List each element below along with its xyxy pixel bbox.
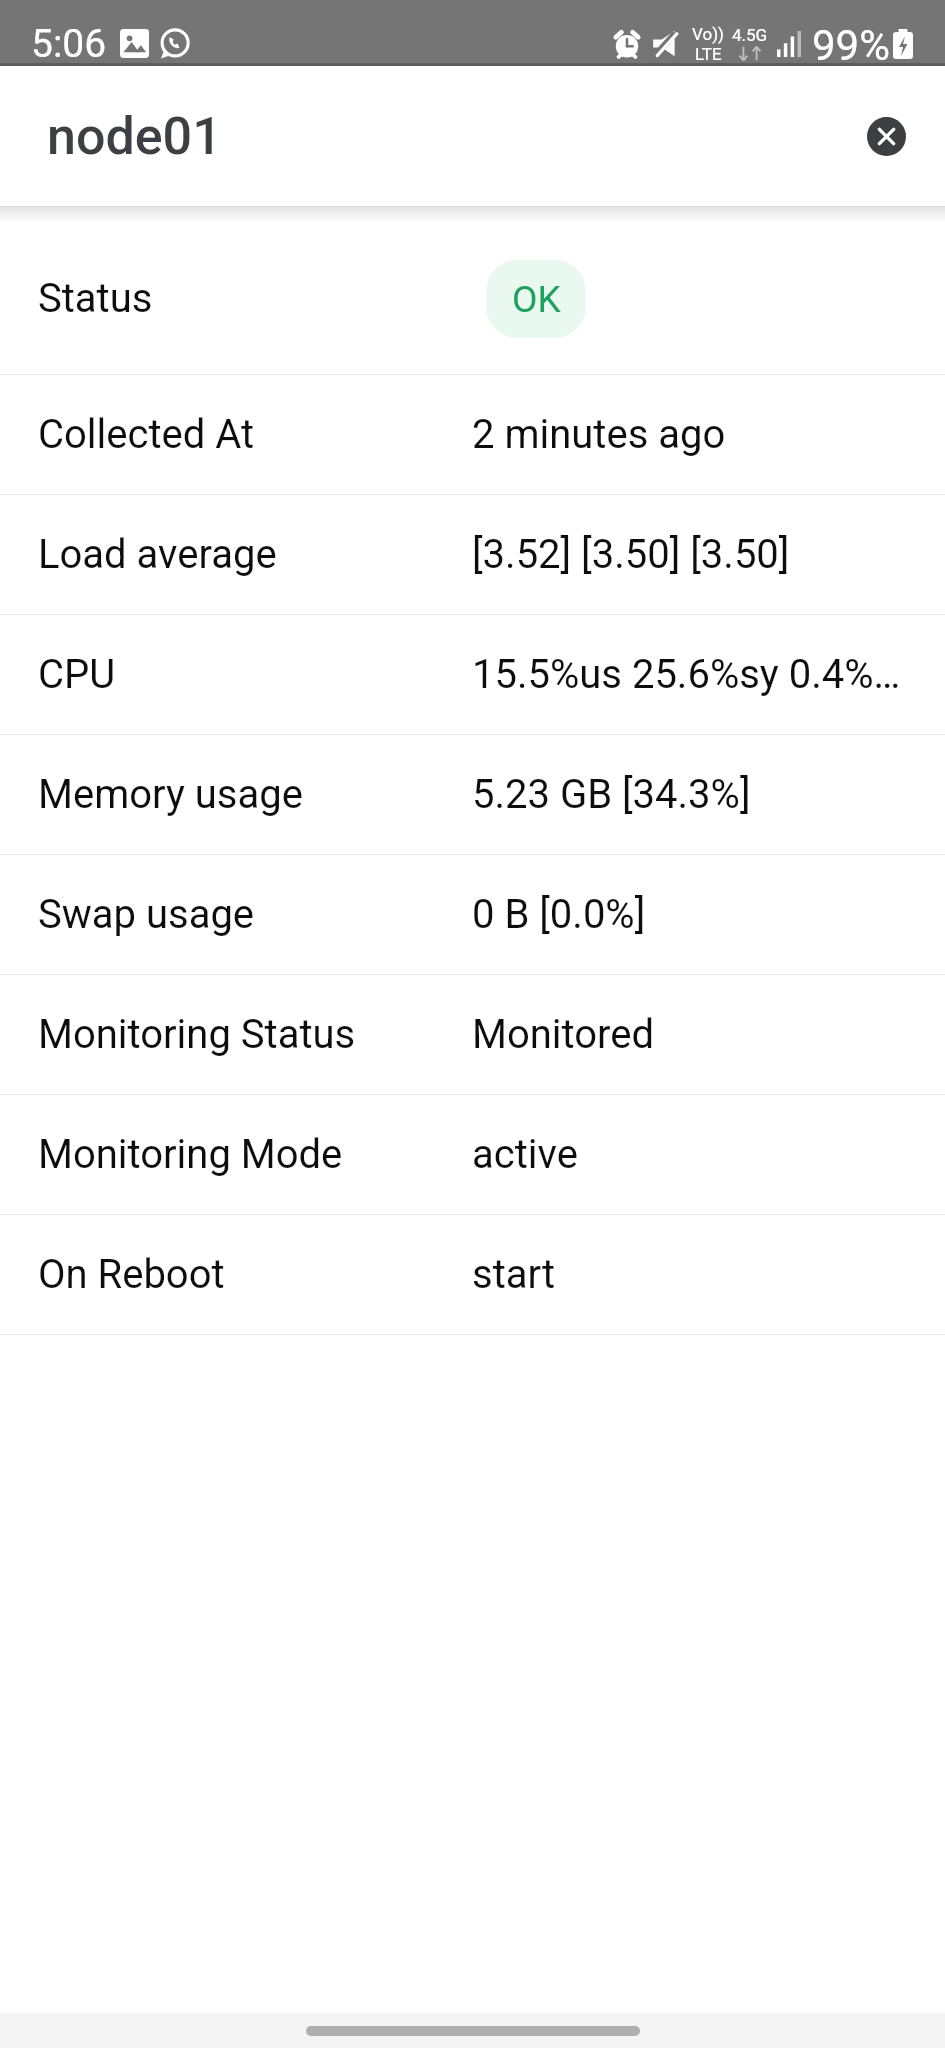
staticText: Monitored <box>472 1011 655 1058</box>
staticText: Status <box>38 275 153 322</box>
staticText: On Reboot <box>38 1251 225 1298</box>
button[interactable]: On Reboot <box>0 1215 945 1335</box>
staticText: Monitoring Status <box>38 1011 356 1058</box>
button[interactable]: Load average <box>0 495 945 615</box>
staticText: active <box>472 1131 578 1178</box>
staticText: node01 <box>47 106 222 167</box>
staticText: Memory usage <box>38 771 303 818</box>
staticText: Load average <box>38 531 277 578</box>
staticText: OK <box>512 278 561 321</box>
staticText: 5:06 <box>31 21 107 66</box>
staticText: start <box>472 1251 556 1298</box>
staticText: Vo)) <box>692 24 724 44</box>
button[interactable]: Close <box>867 117 906 156</box>
button[interactable]: Monitoring Mode <box>0 1095 945 1215</box>
button[interactable]: CPU <box>0 615 945 735</box>
button[interactable]: Monitoring Status <box>0 975 945 1095</box>
button[interactable]: Collected At <box>0 375 945 495</box>
staticText: 2 minutes ago <box>472 411 726 458</box>
staticText: CPU <box>38 651 116 698</box>
staticText: 5.23 GB [34.3%] <box>472 771 751 818</box>
staticText: 0 B [0.0%] <box>472 891 646 938</box>
staticText: 99% <box>812 21 890 66</box>
staticText: Monitoring Mode <box>38 1131 343 1178</box>
staticText: 4.5G <box>732 25 768 45</box>
staticText: Collected At <box>38 411 255 458</box>
staticText: [3.52] [3.50] [3.50] <box>472 531 790 578</box>
staticText: LTE <box>695 44 722 64</box>
button[interactable]: Memory usage <box>0 735 945 855</box>
button[interactable]: Swap usage <box>0 855 945 975</box>
button[interactable]: Status <box>0 223 945 375</box>
staticText: 15.5%us 25.6%sy 0.4%… <box>472 651 901 698</box>
staticText: Swap usage <box>38 891 255 938</box>
